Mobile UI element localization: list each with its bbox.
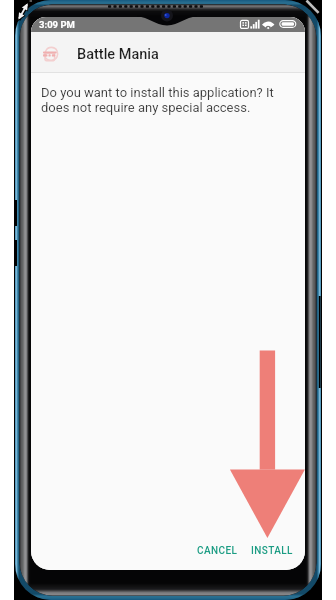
other: Install pointer [31,17,305,570]
staticText: Battle Mania [77,46,159,63]
staticText: INSTALL [251,545,293,557]
staticText: Do you want to install this application?… [41,85,285,115]
staticText: 3:09 PM [39,19,75,30]
staticText: CANCEL [197,545,238,557]
button[interactable]: CANCEL [191,541,244,561]
button[interactable]: INSTALL [245,541,299,561]
